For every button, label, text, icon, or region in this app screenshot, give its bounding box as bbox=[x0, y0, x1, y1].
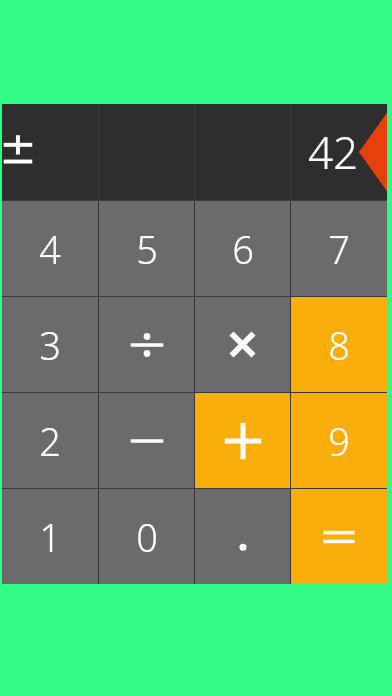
staticText: 9 bbox=[328, 415, 350, 467]
button[interactable]: 5 bbox=[99, 201, 194, 296]
button[interactable]: 0 bbox=[99, 489, 194, 584]
staticText: 6 bbox=[232, 223, 254, 275]
staticText: 1 bbox=[39, 511, 61, 563]
button[interactable]: Backspace bbox=[359, 104, 387, 200]
button[interactable]: Decimal point bbox=[195, 489, 290, 584]
button[interactable]: 1 bbox=[2, 489, 98, 584]
button[interactable]: Subtract bbox=[99, 393, 194, 488]
staticText: 2 bbox=[39, 415, 61, 467]
button[interactable]: 4 bbox=[2, 201, 98, 296]
staticText: 5 bbox=[136, 223, 158, 275]
button[interactable]: 9 bbox=[291, 393, 387, 488]
button[interactable]: 6 bbox=[195, 201, 290, 296]
staticText: 0 bbox=[136, 511, 158, 563]
button[interactable]: Add bbox=[195, 393, 290, 488]
button[interactable]: 7 bbox=[291, 201, 387, 296]
staticText: 42 bbox=[308, 122, 359, 182]
staticText: 8 bbox=[328, 319, 350, 371]
button[interactable]: Toggle sign bbox=[2, 104, 98, 200]
button[interactable]: 2 bbox=[2, 393, 98, 488]
button[interactable]: Multiply bbox=[195, 297, 290, 392]
staticText: 4 bbox=[39, 223, 61, 275]
staticText: 3 bbox=[39, 319, 61, 371]
button[interactable]: Equals bbox=[291, 489, 387, 584]
staticText: 7 bbox=[328, 223, 350, 275]
button[interactable]: 3 bbox=[2, 297, 98, 392]
button[interactable]: Divide bbox=[99, 297, 194, 392]
button[interactable]: 8 bbox=[291, 297, 387, 392]
